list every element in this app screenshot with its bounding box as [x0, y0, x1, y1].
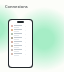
button[interactable]	[9, 44, 32, 48]
button[interactable]	[9, 32, 32, 36]
button[interactable]	[9, 28, 32, 32]
button[interactable]	[9, 36, 32, 40]
staticText: Connexions	[5, 4, 28, 9]
button[interactable]	[9, 52, 32, 56]
button[interactable]	[9, 24, 32, 28]
button[interactable]	[9, 40, 32, 44]
button[interactable]	[9, 48, 32, 52]
